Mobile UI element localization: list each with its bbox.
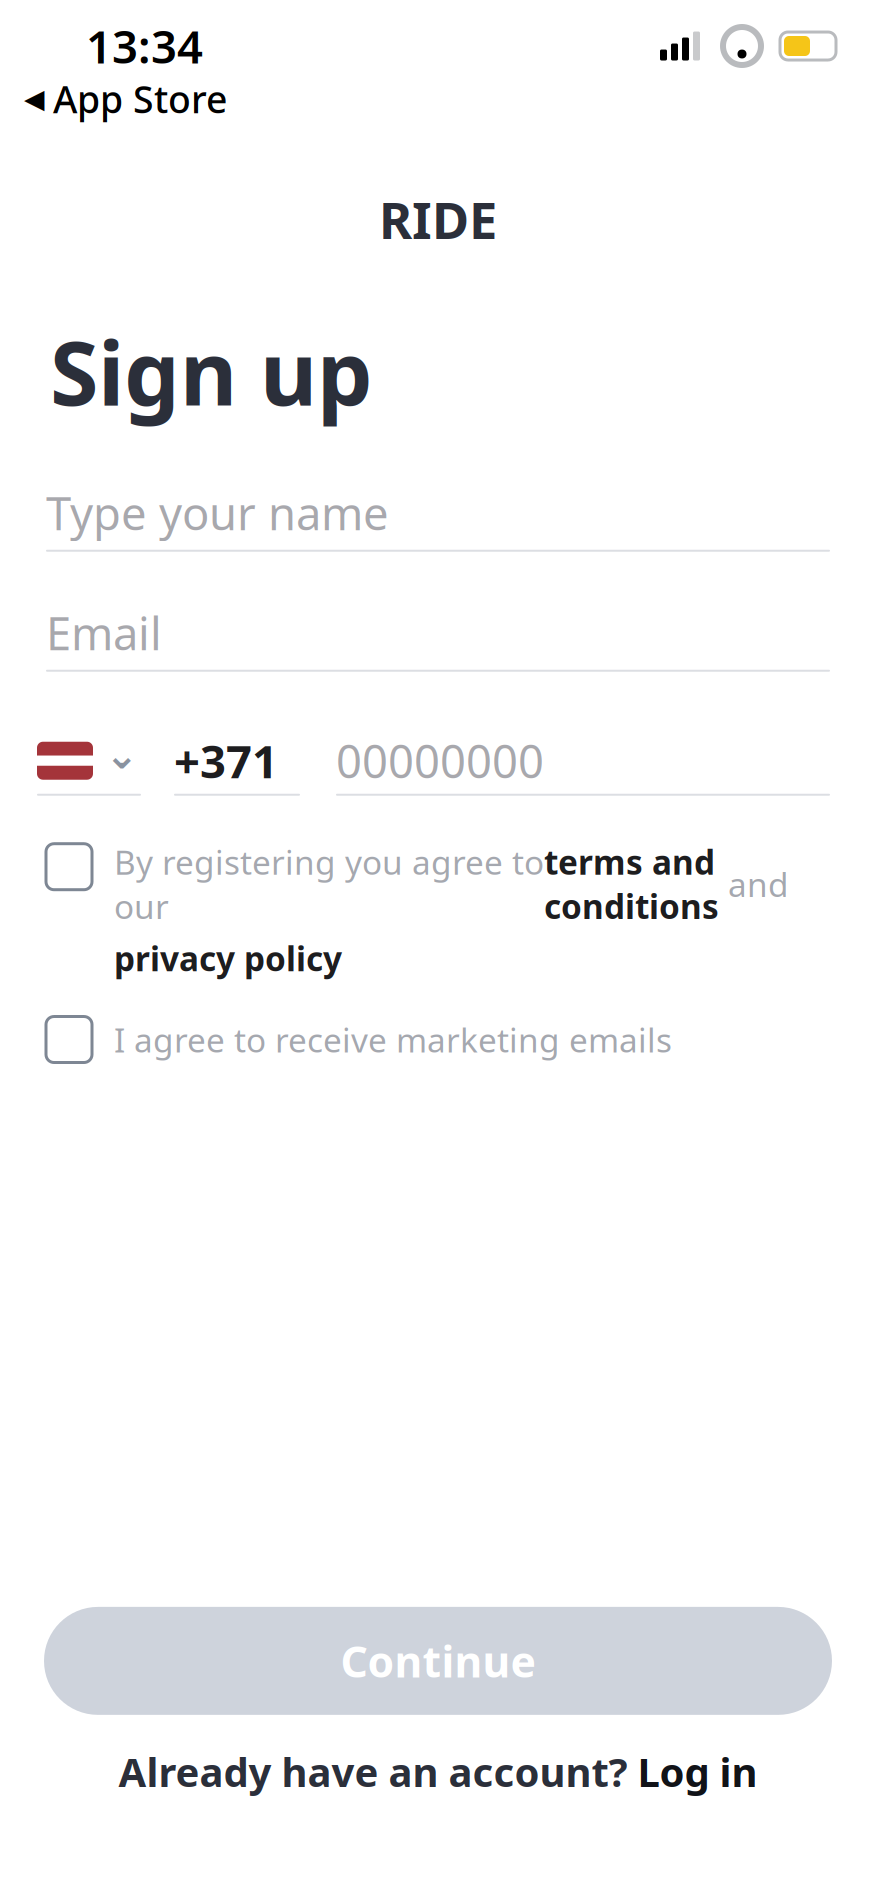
button[interactable]: ◀	[0, 74, 876, 124]
staticText: I agree to receive marketing emails	[114, 1017, 672, 1062]
staticText: 13:34	[86, 16, 203, 76]
button[interactable]: Continue	[44, 1607, 832, 1715]
staticText: Log in	[637, 1745, 757, 1798]
button[interactable]: Already have an account?	[118, 1729, 757, 1814]
staticText: Email	[46, 603, 162, 663]
staticText: and	[719, 862, 789, 906]
staticText: Sign up	[50, 313, 373, 430]
staticText: ◀	[24, 84, 45, 114]
button[interactable]: Select country	[46, 728, 150, 796]
staticText: ⌄	[105, 732, 139, 777]
staticText: terms and conditions	[544, 840, 719, 928]
staticText: By registering you agree to our	[114, 840, 544, 928]
staticText: Already have an account?	[118, 1745, 637, 1798]
staticText: 00000000	[336, 731, 544, 791]
button[interactable]: By registering you agree to our	[46, 840, 830, 980]
staticText: +371	[174, 731, 278, 791]
staticText: App Store	[53, 74, 227, 124]
staticText: Type your name	[46, 483, 389, 543]
staticText: Continue	[340, 1633, 535, 1689]
staticText: RIDE	[379, 186, 497, 253]
staticText: privacy policy	[114, 936, 342, 981]
button[interactable]: I agree to receive marketing emails	[46, 1016, 830, 1062]
